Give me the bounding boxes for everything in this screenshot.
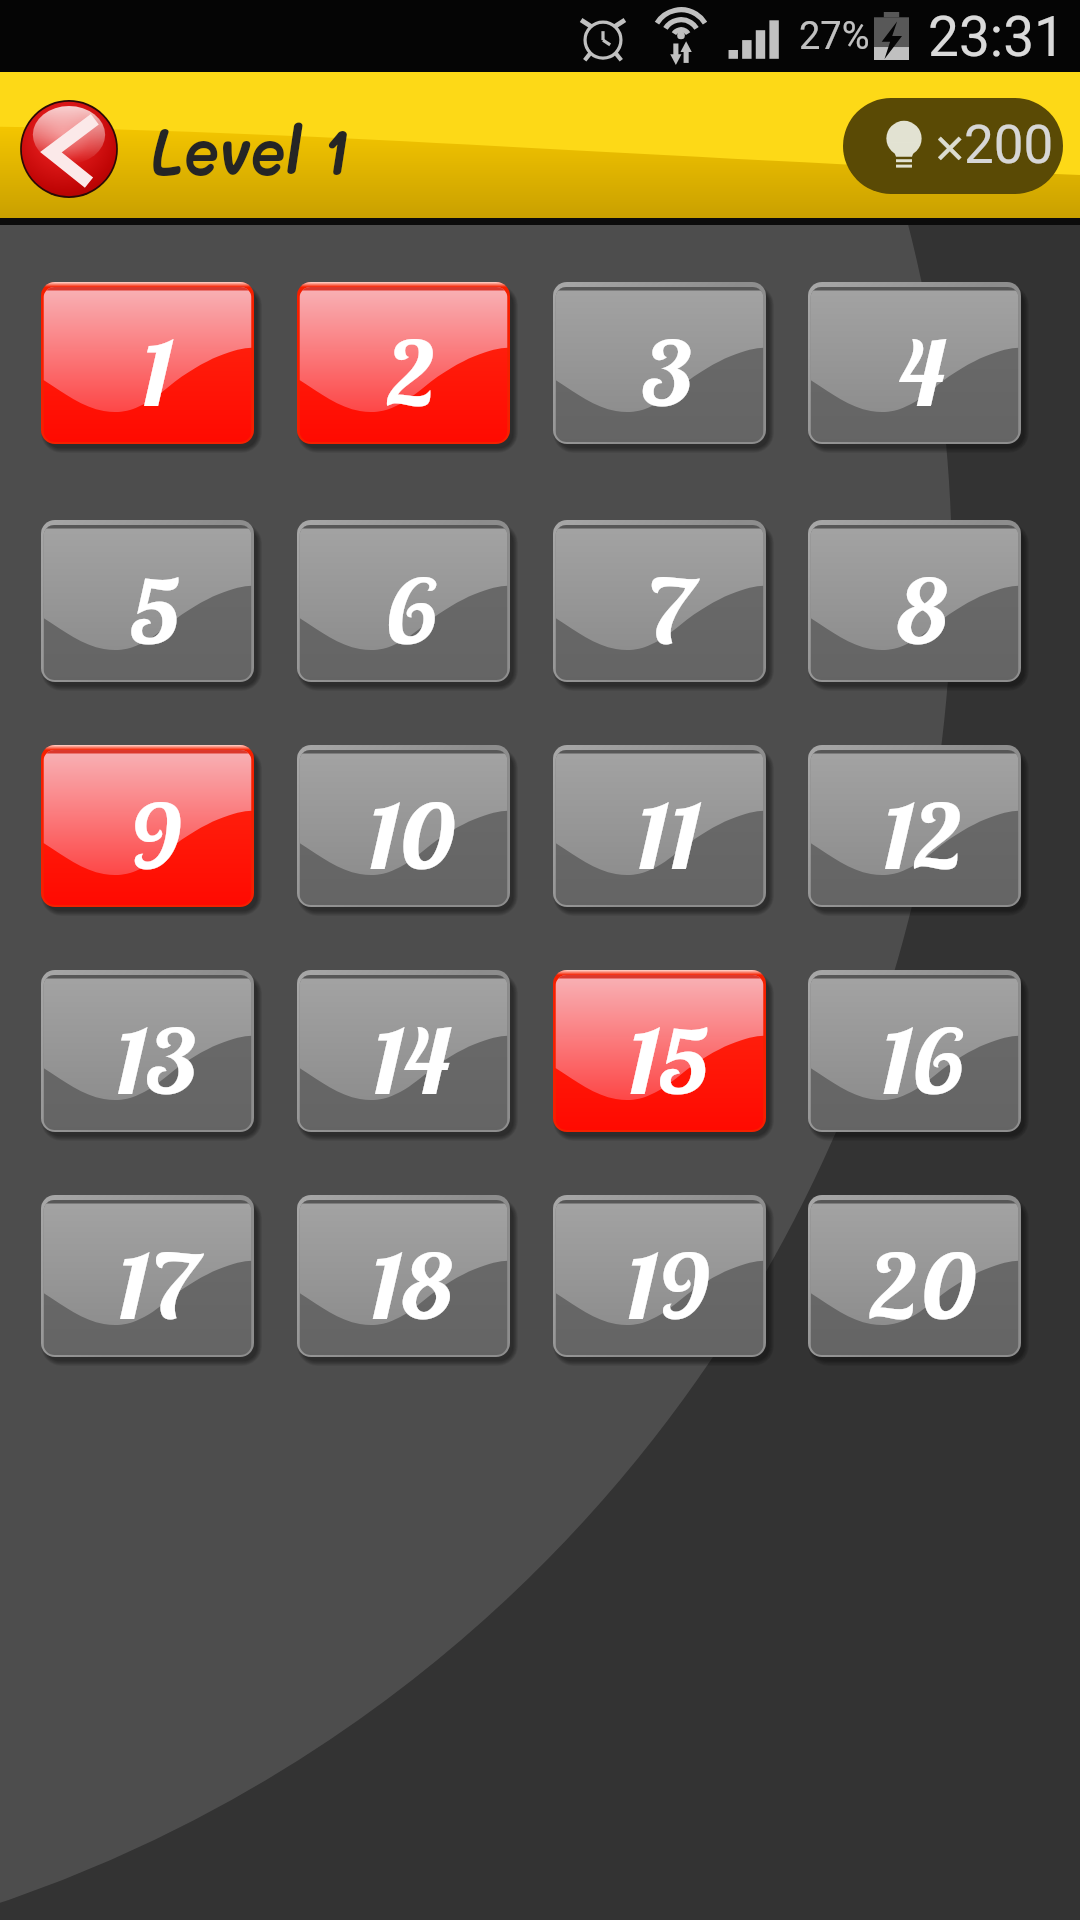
staticText: 11 — [635, 781, 700, 891]
button[interactable]: Back — [17, 97, 121, 201]
staticText: 13 — [113, 1006, 199, 1116]
staticText: 200 — [964, 114, 1054, 176]
button[interactable]: 17 — [41, 1195, 256, 1359]
button[interactable]: ✕ — [843, 98, 1063, 194]
staticText: 12 — [880, 781, 965, 891]
button[interactable]: 15 — [553, 970, 768, 1134]
button[interactable]: 5 — [41, 520, 256, 684]
button[interactable]: 2 — [297, 282, 512, 446]
button[interactable]: 9 — [41, 745, 256, 909]
staticText: 9 — [129, 781, 182, 891]
staticText: 4 — [898, 318, 947, 428]
button[interactable]: 11 — [553, 745, 768, 909]
button[interactable]: 1 — [41, 282, 256, 446]
staticText: ✕ — [933, 126, 967, 173]
button[interactable]: 6 — [297, 520, 512, 684]
staticText: 1 — [139, 318, 172, 428]
button[interactable]: 10 — [297, 745, 512, 909]
staticText: 15 — [626, 1006, 710, 1116]
staticText: 3 — [642, 318, 694, 428]
button[interactable]: 19 — [553, 1195, 768, 1359]
staticText: 18 — [368, 1231, 455, 1341]
button[interactable]: 18 — [297, 1195, 512, 1359]
button[interactable]: 3 — [553, 282, 768, 446]
button[interactable]: 4 — [808, 282, 1023, 446]
staticText: 8 — [895, 556, 949, 666]
staticText: 19 — [624, 1231, 711, 1341]
button[interactable]: 13 — [41, 970, 256, 1134]
button[interactable]: 12 — [808, 745, 1023, 909]
staticText: 6 — [384, 556, 439, 666]
staticText: 23:31 — [928, 5, 1065, 69]
staticText: 20 — [868, 1231, 978, 1341]
staticText: Level 1 — [150, 107, 349, 192]
staticText: 5 — [130, 556, 181, 666]
staticText: 14 — [370, 1006, 453, 1116]
staticText: 2 — [386, 318, 437, 428]
staticText: 27% — [799, 14, 870, 59]
staticText: 7 — [644, 556, 692, 666]
button[interactable]: 20 — [808, 1195, 1023, 1359]
button[interactable]: 7 — [553, 520, 768, 684]
staticText: 10 — [366, 781, 457, 891]
button[interactable]: 14 — [297, 970, 512, 1134]
button[interactable]: 16 — [808, 970, 1023, 1134]
staticText: 17 — [115, 1231, 197, 1341]
staticText: 16 — [879, 1006, 966, 1116]
button[interactable]: 8 — [808, 520, 1023, 684]
